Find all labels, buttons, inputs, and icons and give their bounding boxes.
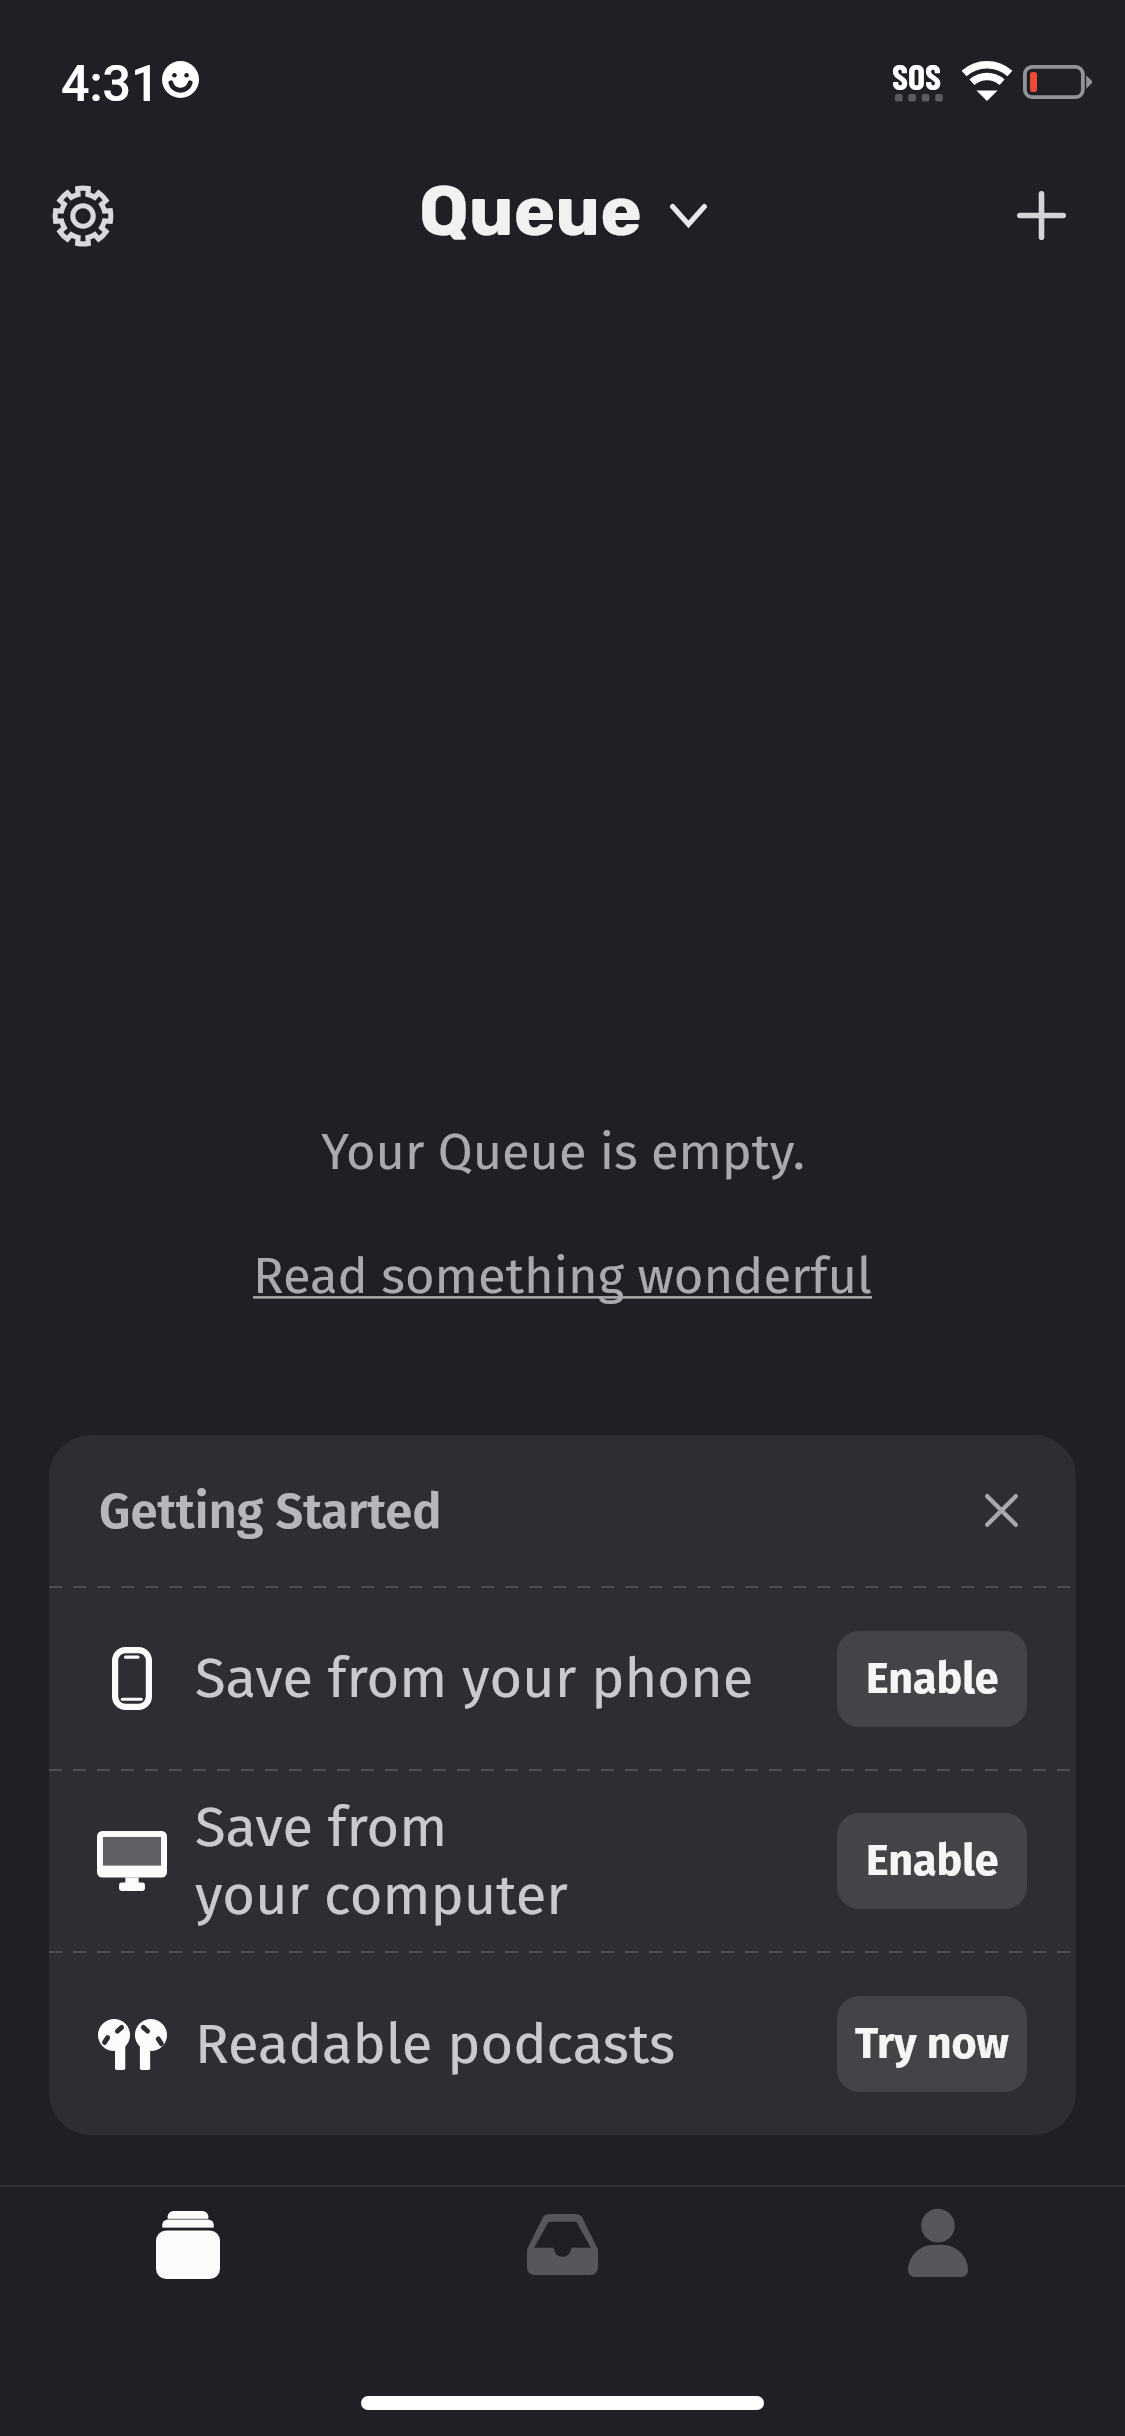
staticText: Save from your phone <box>195 1645 886 1712</box>
button[interactable]: Add <box>981 155 1101 275</box>
button[interactable]: Close <box>955 1464 1047 1556</box>
staticText: Enable <box>866 1653 999 1705</box>
staticText: Enable <box>866 1835 999 1887</box>
button[interactable]: Settings <box>23 156 143 276</box>
button[interactable]: Queue <box>0 2187 375 2367</box>
staticText: SOS <box>892 54 941 97</box>
button[interactable]: Read something wonderful <box>253 1246 872 1307</box>
staticText: Getting Started <box>99 1482 442 1541</box>
staticText: Your Queue is empty. <box>321 1122 805 1183</box>
button[interactable]: Inbox <box>375 2187 750 2367</box>
button[interactable]: Queue <box>419 170 707 253</box>
staticText: 4:31 <box>61 55 160 114</box>
staticText: Save from your computer <box>195 1794 886 1929</box>
button[interactable]: Readable podcasts <box>49 1953 1076 2135</box>
button[interactable]: Profile <box>750 2187 1125 2367</box>
button[interactable]: Enable <box>837 1813 1027 1909</box>
staticText: Queue <box>419 170 642 253</box>
staticText: Read something wonderful <box>253 1246 872 1307</box>
staticText: Try now <box>855 2018 1009 2070</box>
button[interactable]: Enable <box>837 1631 1027 1727</box>
button[interactable]: Try now <box>837 1996 1027 2092</box>
staticText: Readable podcasts <box>195 2011 886 2078</box>
button[interactable]: Save from your computer <box>49 1771 1076 1951</box>
button[interactable]: Save from your phone <box>49 1588 1076 1769</box>
